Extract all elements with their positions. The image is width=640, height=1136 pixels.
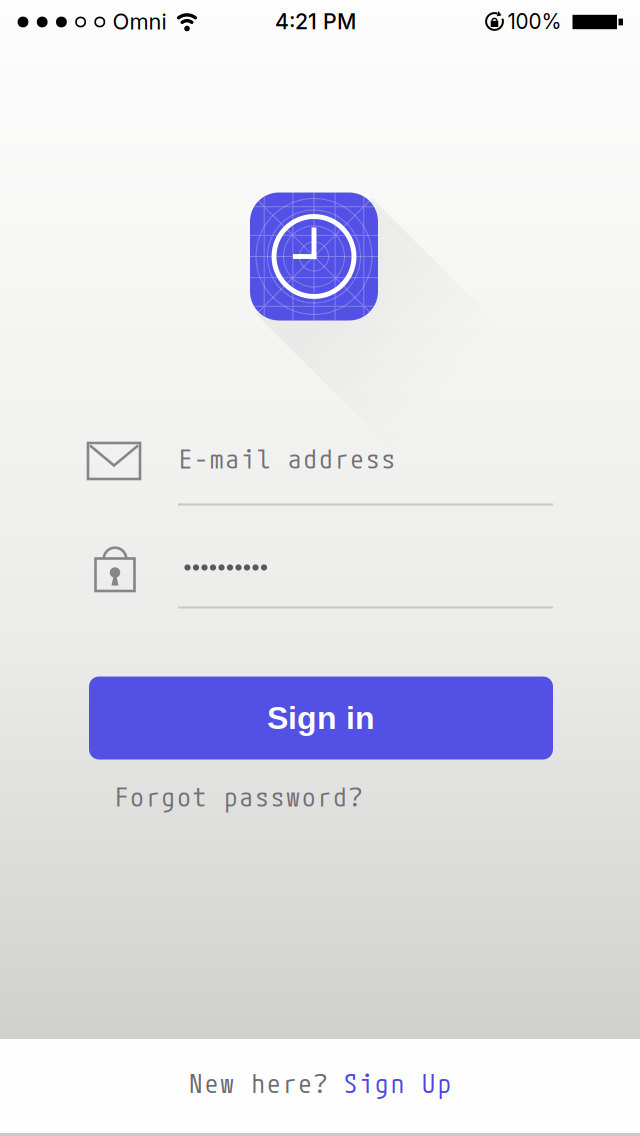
button[interactable]: E-mail address [88,440,553,506]
staticText: E-mail address [179,442,395,474]
staticText: Sign Up [344,1067,451,1099]
staticText: Sign in [267,700,375,736]
button[interactable]: Sign Up [344,1067,451,1099]
staticText: Omni [112,8,166,35]
button[interactable]: Password [88,540,553,613]
staticText: 100% [507,9,561,34]
button[interactable]: Sign in [89,676,553,759]
button[interactable]: Forgot password? [115,780,362,812]
staticText: Forgot password? [115,780,362,812]
staticText: 4:21 PM [275,9,356,34]
staticText: New here? [189,1067,327,1099]
